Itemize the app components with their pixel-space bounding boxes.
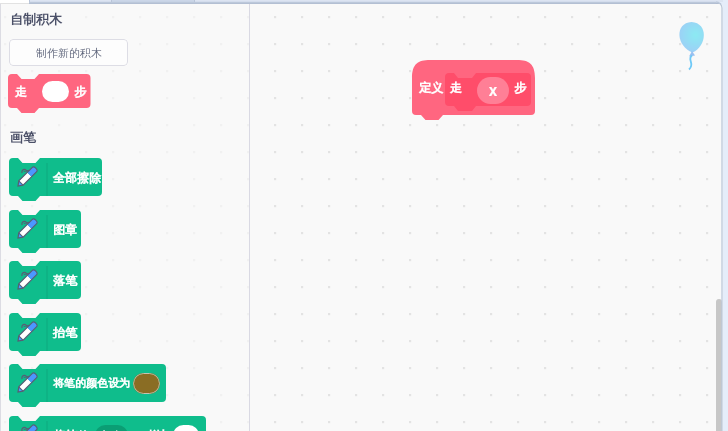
staticText: X [489, 83, 498, 99]
staticText: 定义 [419, 80, 443, 95]
staticText: 全部擦除 [53, 170, 101, 185]
staticText: 图章 [53, 222, 77, 237]
button[interactable]: 落笔 [9, 261, 85, 305]
button[interactable]: 将笔的颜色设为 [9, 364, 171, 408]
button[interactable]: 走 [8, 74, 102, 114]
button[interactable]: 抬笔 [9, 313, 85, 357]
button[interactable]: 将笔的 [9, 416, 211, 431]
button[interactable]: 制作新的积木 [9, 39, 128, 66]
other: Balloon sprite [675, 19, 717, 75]
button[interactable]: X [412, 60, 544, 128]
button[interactable]: 图章 [9, 210, 85, 254]
staticText: 落笔 [53, 273, 77, 288]
staticText: 画笔 [10, 129, 36, 145]
staticText: 走 [15, 84, 27, 99]
staticText: 步 [74, 84, 86, 99]
staticText: 自制积木 [10, 11, 62, 27]
staticText: 颜色 [101, 429, 123, 431]
staticText: 抬笔 [53, 325, 77, 340]
button[interactable]: 全部擦除 [9, 158, 106, 202]
staticText: 走 [450, 80, 462, 95]
staticText: 步 [514, 80, 526, 95]
staticText: 增加 [148, 428, 172, 431]
staticText: 将笔的 [53, 428, 89, 431]
staticText: 制作新的积木 [36, 46, 102, 60]
staticText: 将笔的颜色设为 [53, 376, 130, 390]
